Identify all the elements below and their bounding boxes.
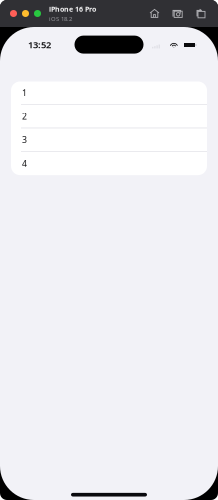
button[interactable]: 3 [11,128,207,152]
staticText: 3 [22,134,27,145]
button[interactable]: Record Screen [195,8,206,19]
staticText: 13:52 [28,38,51,51]
staticText: 1 [22,87,27,99]
staticText: 2 [22,110,27,122]
button[interactable]: 4 [11,152,207,175]
staticText: iOS 18.2 [49,15,72,23]
staticText: iPhone 16 Pro [49,4,96,14]
button[interactable]: 1 [11,81,207,105]
button[interactable]: Home [149,8,160,19]
button[interactable]: Screenshot [172,8,183,19]
staticText: 4 [22,157,27,169]
button[interactable]: 2 [11,105,207,128]
